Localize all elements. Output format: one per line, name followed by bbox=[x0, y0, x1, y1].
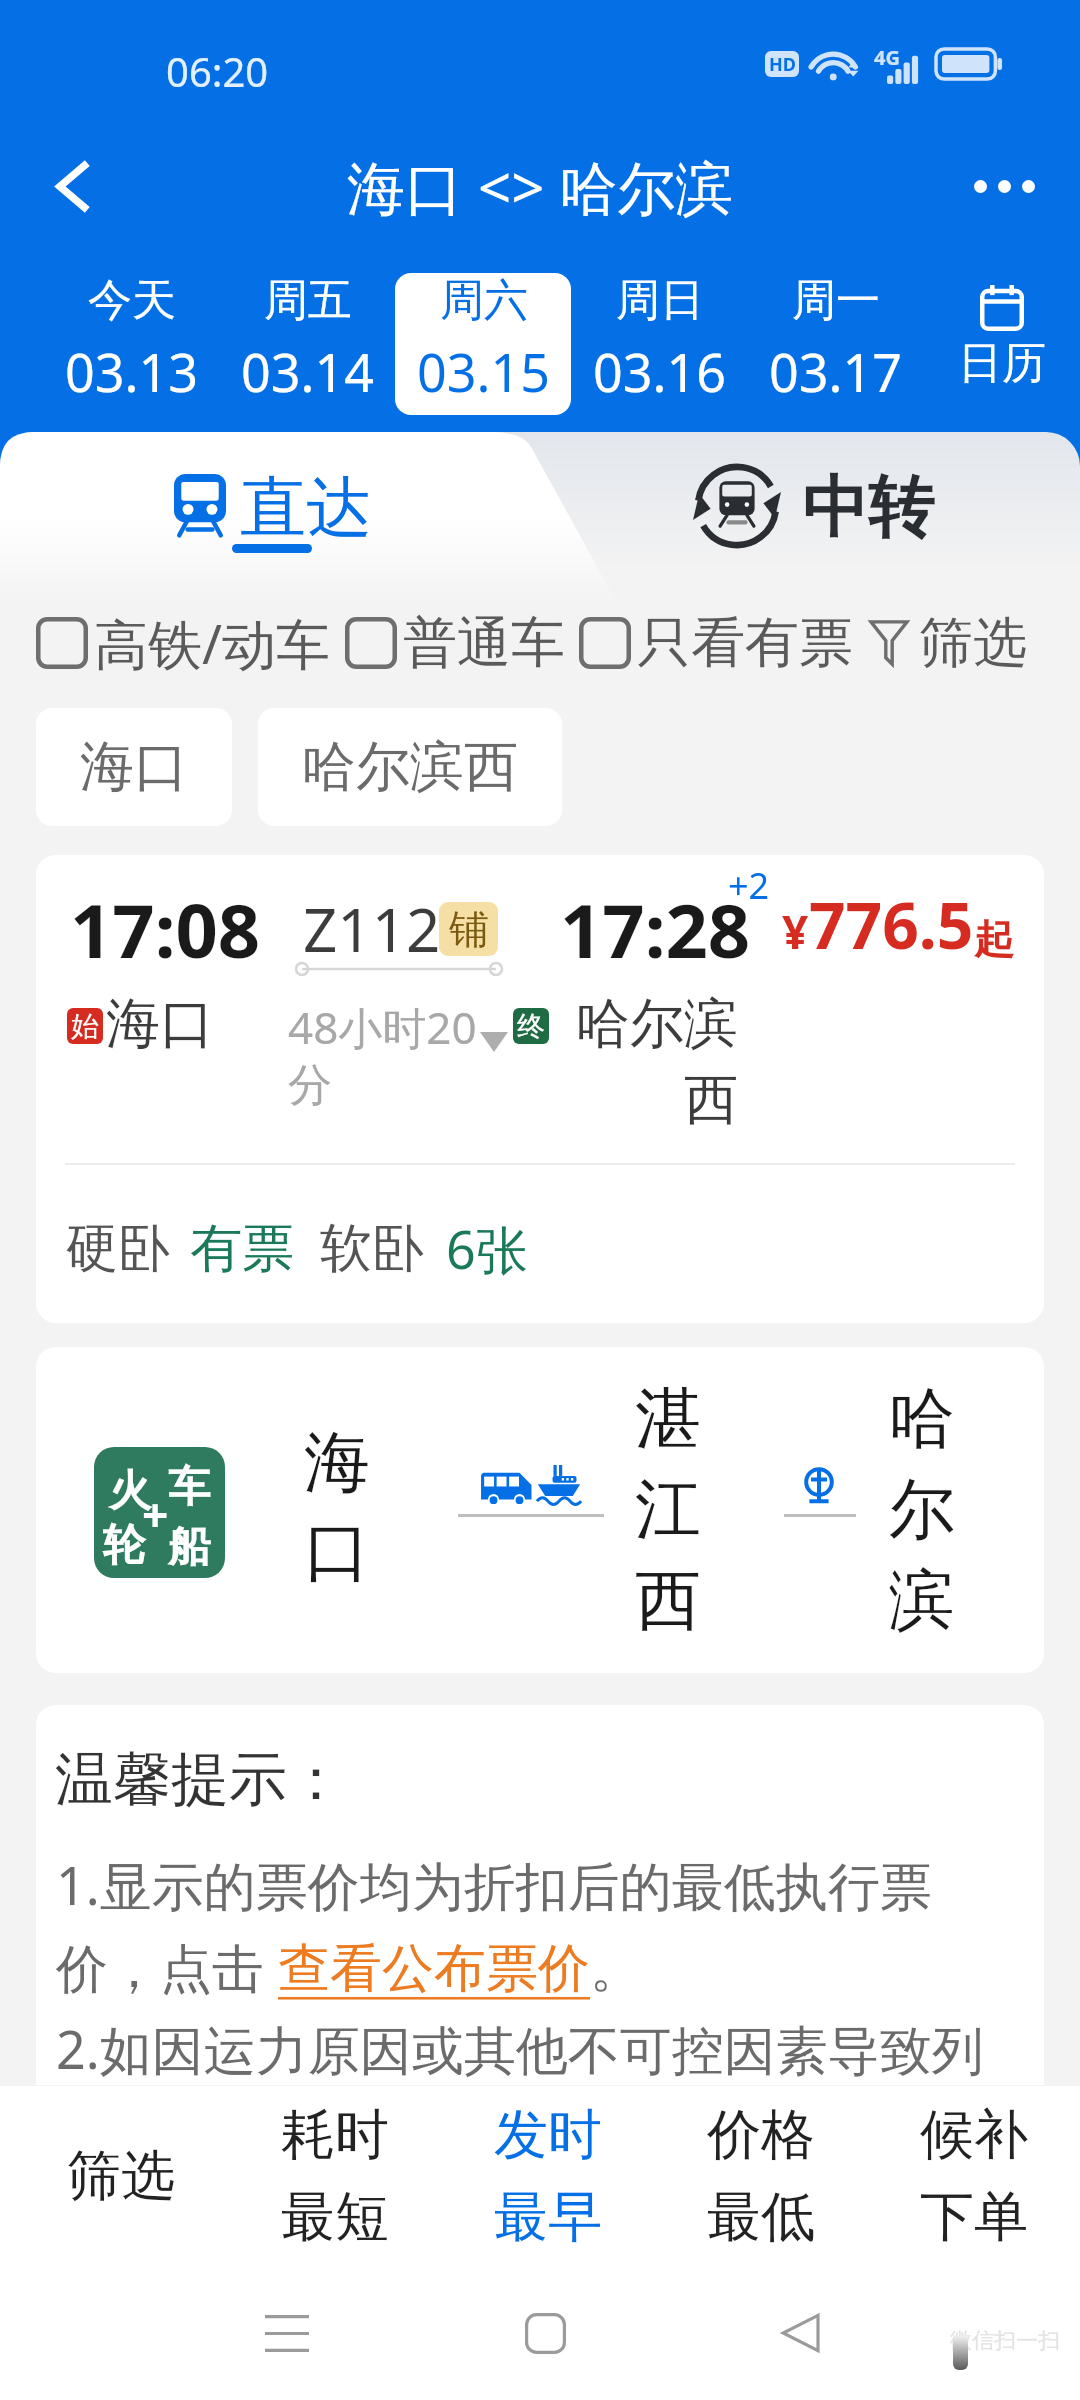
staticText: 03.13 bbox=[65, 336, 198, 407]
staticText: 海口 <> 哈尔滨 bbox=[347, 147, 734, 226]
staticText: 4G bbox=[874, 44, 900, 71]
button[interactable]: More options bbox=[956, 138, 1052, 234]
staticText: HD bbox=[769, 52, 796, 77]
button[interactable]: 17:08 bbox=[36, 855, 1044, 1323]
staticText: 最低 bbox=[707, 2183, 815, 2251]
staticText: 耗时 bbox=[281, 2101, 389, 2169]
staticText: 海口 bbox=[304, 1421, 374, 1594]
staticText: 6张 bbox=[446, 1213, 528, 1284]
button[interactable]: Home bbox=[487, 2266, 603, 2400]
button[interactable]: 今天 bbox=[43, 273, 219, 415]
staticText: 哈尔滨西 bbox=[570, 990, 738, 1134]
staticText: 03.14 bbox=[241, 336, 374, 407]
staticText: 筛选 bbox=[919, 609, 1027, 677]
staticText: 周一 bbox=[792, 273, 880, 328]
button[interactable]: 周一 bbox=[747, 273, 923, 415]
button[interactable]: 只看有票 bbox=[579, 609, 853, 677]
staticText: + bbox=[142, 1483, 169, 1546]
button[interactable]: Back bbox=[742, 2266, 858, 2400]
button[interactable]: Recents bbox=[229, 2266, 345, 2400]
staticText: 车 bbox=[168, 1461, 210, 1514]
button[interactable]: Back bbox=[22, 136, 122, 236]
staticText: 始 bbox=[71, 1009, 99, 1044]
staticText: 日历 bbox=[958, 336, 1046, 391]
button[interactable]: 普通车 bbox=[345, 609, 565, 677]
button[interactable]: 火 bbox=[36, 1347, 1044, 1673]
staticText: 火 bbox=[109, 1465, 151, 1518]
staticText: 直达 bbox=[240, 466, 372, 549]
staticText: 微信扫一扫 bbox=[950, 2327, 1060, 2355]
staticText: +2 bbox=[728, 861, 770, 910]
staticText: 。 bbox=[590, 1936, 642, 2002]
staticText: 海口 bbox=[80, 733, 188, 801]
button[interactable]: 候补 bbox=[867, 2086, 1080, 2266]
staticText: ¥ bbox=[782, 900, 809, 963]
button[interactable]: 发时 bbox=[441, 2086, 654, 2266]
button[interactable]: 高铁/动车 bbox=[36, 606, 331, 680]
button[interactable]: 周日 bbox=[571, 273, 747, 415]
staticText: 软卧 bbox=[320, 1216, 424, 1282]
button[interactable]: 中转 bbox=[540, 432, 1080, 562]
staticText: 17:08 bbox=[70, 879, 261, 980]
staticText: 17:28 bbox=[560, 879, 751, 980]
staticText: 周六 bbox=[440, 273, 528, 328]
staticText: 价，点击 bbox=[56, 1931, 278, 2002]
staticText: 周五 bbox=[264, 273, 352, 328]
staticText: 终 bbox=[517, 1009, 545, 1044]
staticText: 湛江西 bbox=[635, 1377, 705, 1643]
staticText: 48小时20分 bbox=[288, 997, 488, 1113]
staticText: 筛选 bbox=[67, 2142, 175, 2210]
staticText: 下单 bbox=[920, 2183, 1028, 2251]
button[interactable]: 筛选 bbox=[869, 609, 1027, 677]
staticText: 03.15 bbox=[417, 336, 550, 407]
button[interactable]: 海口 bbox=[36, 708, 232, 826]
staticText: 价格 bbox=[707, 2101, 815, 2169]
staticText: 1.显示的票价均为折扣后的最低执行票 bbox=[56, 1849, 932, 1920]
staticText: 最早 bbox=[494, 2183, 602, 2251]
button[interactable]: 日历 bbox=[923, 256, 1080, 432]
staticText: 发时 bbox=[494, 2101, 602, 2169]
button[interactable]: 耗时 bbox=[228, 2086, 441, 2266]
staticText: 铺 bbox=[449, 904, 489, 954]
button[interactable]: 价格 bbox=[654, 2086, 867, 2266]
staticText: Z112 bbox=[303, 888, 441, 970]
button[interactable]: 筛选 bbox=[14, 2086, 228, 2266]
staticText: 06:20 bbox=[166, 44, 269, 98]
staticText: 候补 bbox=[920, 2101, 1028, 2169]
staticText: 776.5 bbox=[809, 881, 974, 968]
button[interactable]: 哈尔滨西 bbox=[258, 708, 562, 826]
staticText: 温馨提示： bbox=[55, 1743, 345, 1816]
staticText: 周日 bbox=[616, 273, 704, 328]
staticText: 03.16 bbox=[593, 336, 726, 407]
staticText: 轮 bbox=[103, 1519, 145, 1572]
staticText: 哈尔滨 bbox=[889, 1377, 959, 1643]
staticText: 03.17 bbox=[769, 336, 902, 407]
staticText: 中转 bbox=[802, 466, 934, 549]
button[interactable]: 直达 bbox=[0, 432, 540, 562]
staticText: 只看有票 bbox=[637, 609, 853, 677]
staticText: 普通车 bbox=[403, 609, 565, 677]
staticText: 起 bbox=[974, 914, 1014, 964]
button[interactable]: 周六 bbox=[395, 273, 571, 415]
staticText: 硬卧 bbox=[66, 1216, 170, 1282]
staticText: 有票 bbox=[190, 1216, 294, 1282]
staticText: 今天 bbox=[88, 273, 176, 328]
staticText: 哈尔滨西 bbox=[302, 733, 518, 801]
staticText: 高铁/动车 bbox=[94, 606, 331, 680]
staticText: 船 bbox=[168, 1521, 210, 1574]
staticText: 2.如因运力原因或其他不可控因素导致列 bbox=[56, 2013, 984, 2084]
button[interactable]: 查看公布票价 bbox=[278, 1936, 590, 2002]
button[interactable]: 周五 bbox=[219, 273, 395, 415]
staticText: 最短 bbox=[281, 2183, 389, 2251]
staticText: 海口 bbox=[106, 990, 214, 1058]
